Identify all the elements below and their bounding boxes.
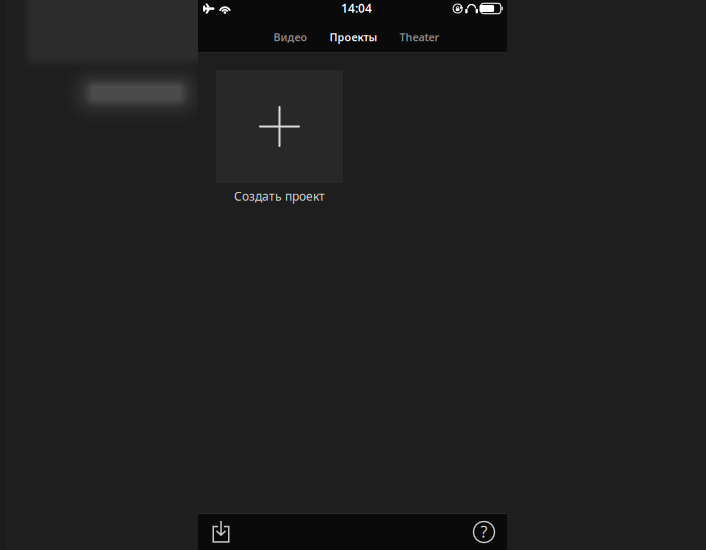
staticText: Создать проект: [234, 188, 325, 204]
button[interactable]: Help: [463, 514, 505, 550]
staticText: 14:04: [341, 0, 372, 16]
button[interactable]: Theater: [399, 30, 439, 44]
button[interactable]: Видео: [273, 30, 307, 44]
button[interactable]: Создать проект: [200, 70, 359, 205]
staticText: ?: [480, 521, 487, 542]
staticText: Видео: [273, 30, 307, 44]
button[interactable]: Import media: [200, 514, 242, 550]
button[interactable]: Проекты: [329, 30, 377, 44]
staticText: Theater: [399, 30, 439, 44]
staticText: Проекты: [329, 30, 377, 44]
